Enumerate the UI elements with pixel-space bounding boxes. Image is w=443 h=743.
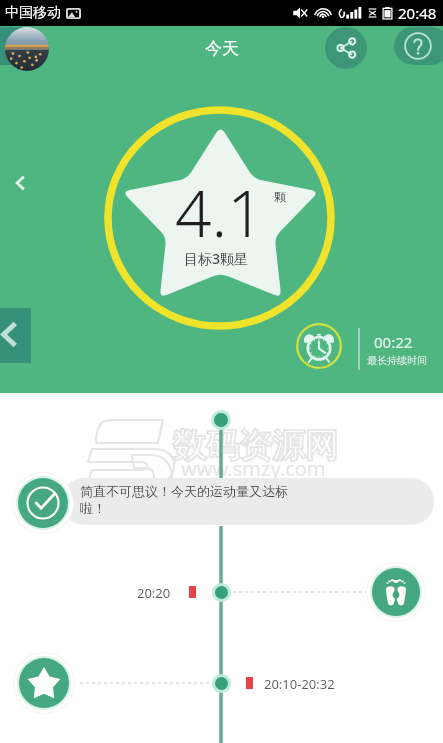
staticText: 最长持续时间	[367, 354, 427, 367]
button[interactable]: Share	[325, 27, 367, 69]
staticText: 20:20	[137, 584, 171, 602]
staticText: 数码资源网	[173, 425, 338, 467]
button[interactable]: Help	[394, 27, 443, 65]
staticText: 20:48	[398, 3, 437, 23]
button[interactable]: Previous day	[4, 167, 36, 199]
staticText: 今天	[205, 38, 239, 59]
staticText: 00:22	[374, 332, 413, 352]
button[interactable]: 简直不可思议！今天的运动量又达标啦！	[61, 478, 434, 525]
staticText: 简直不可思议！今天的运动量又达标啦！	[80, 483, 295, 517]
staticText: 中国移动	[5, 4, 61, 22]
button[interactable]: Activity	[12, 472, 74, 534]
staticText: 20:10-20:32	[264, 675, 335, 693]
button[interactable]: Longest duration	[296, 323, 342, 369]
staticText: 颗	[274, 189, 286, 204]
staticText: www.smzy.com	[181, 455, 326, 482]
button[interactable]: Previous	[0, 308, 31, 363]
button[interactable]: Profile	[0, 27, 31, 65]
button[interactable]: Activity	[366, 562, 426, 622]
button[interactable]: Activity	[13, 652, 75, 714]
staticText: 目标3颗星	[184, 249, 249, 268]
staticText: 4.1	[175, 169, 264, 256]
